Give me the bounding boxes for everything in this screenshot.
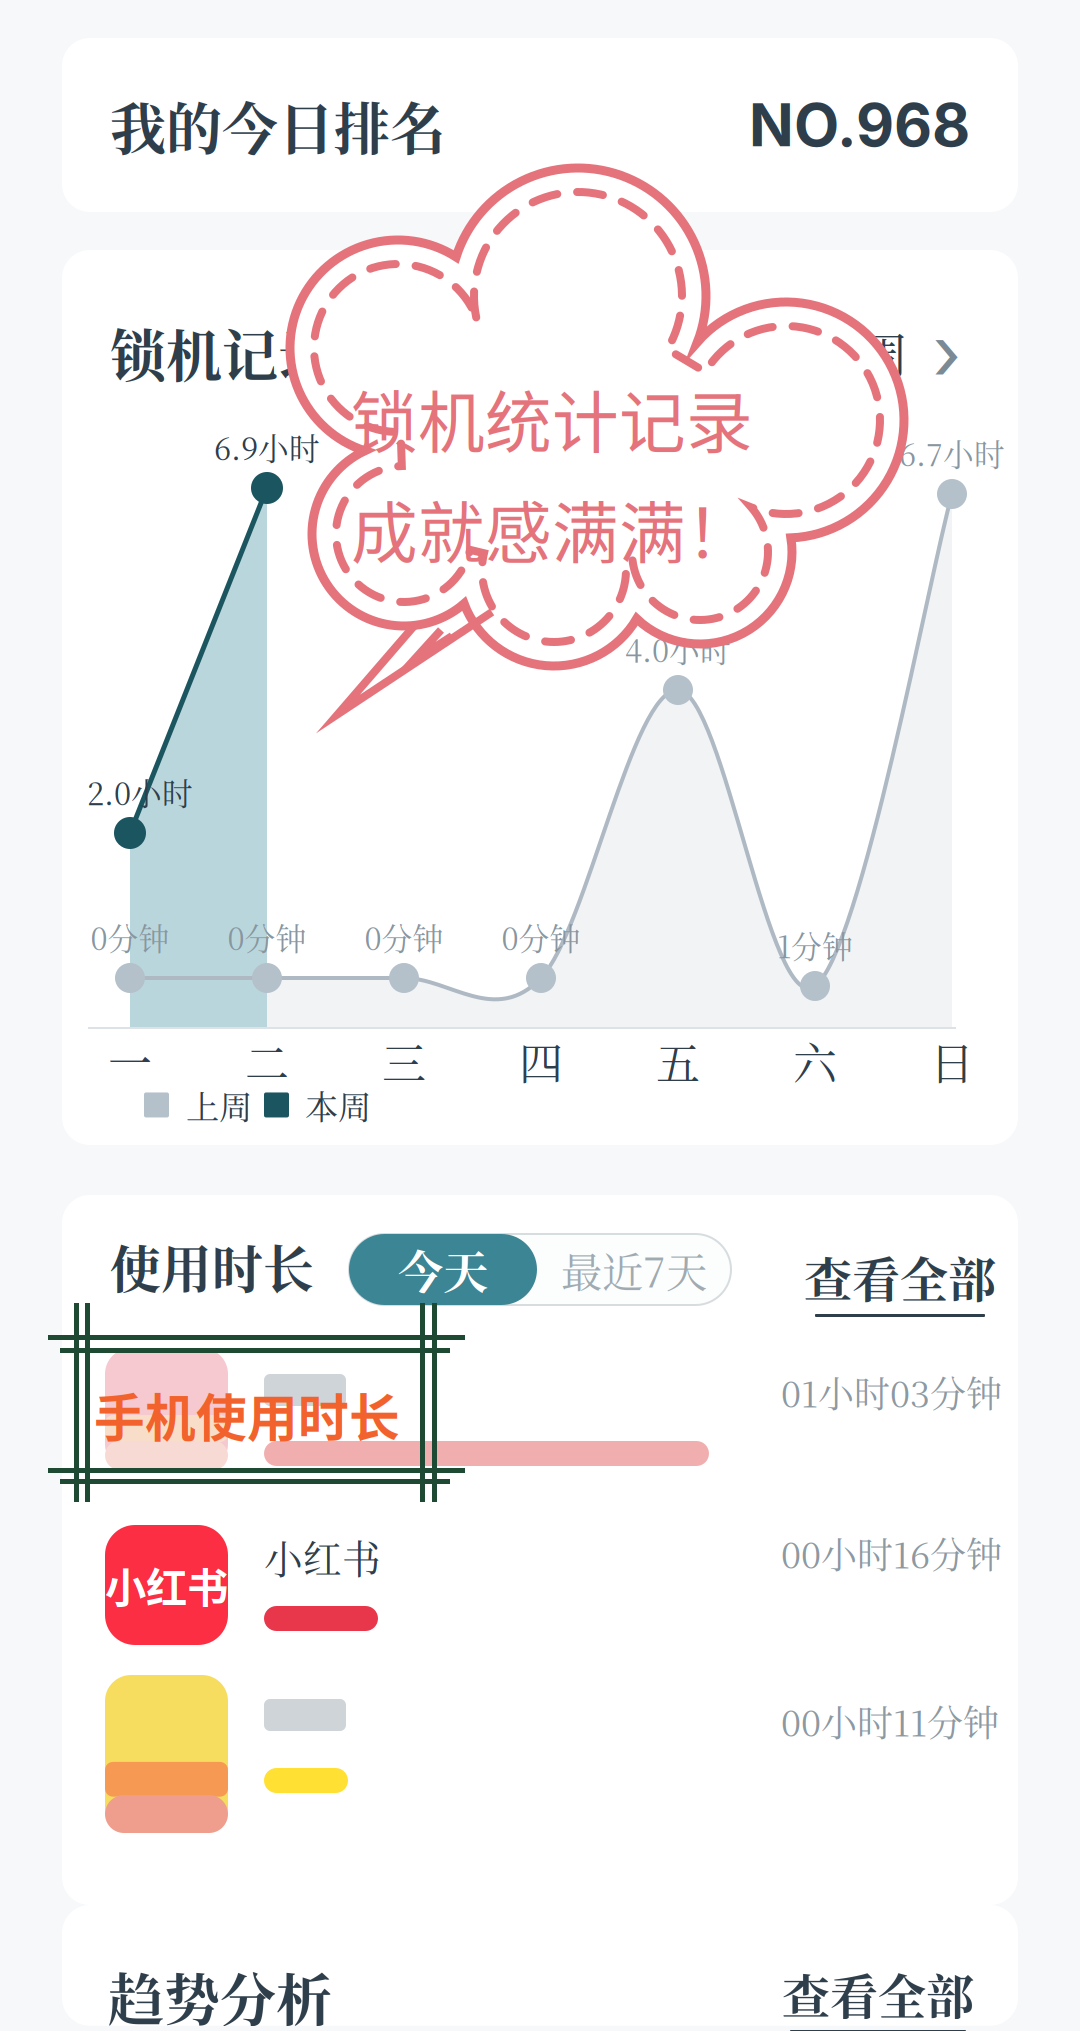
staticText: 0分钟 [364,915,443,959]
button[interactable]: 上周 [796,318,924,387]
staticText: 成就感满满！ [351,480,753,577]
button[interactable]: 最近7天 [537,1234,731,1305]
button[interactable]: Previous week [750,321,796,383]
staticText: 0分钟 [90,915,169,959]
staticText: 01小时03分钟 [781,1366,1002,1418]
staticText: 趋势分析 [108,1956,332,2031]
staticText: 锁机统计记录 [351,370,753,466]
staticText: 0分钟 [501,915,580,959]
staticText: 日 [930,1029,974,1093]
staticText: 00小时11分钟 [781,1695,999,1747]
button[interactable]: Next week [924,321,970,383]
staticText: 三 [382,1029,426,1093]
staticText: › [932,307,961,397]
staticText: 6.7小时 [899,431,1005,475]
staticText: 上周 [186,1081,252,1129]
staticText: 查看全部 [782,1959,974,2028]
staticText: 今天 [398,1237,488,1302]
button[interactable]: 我的今日排名 [62,38,1018,212]
staticText: 五 [656,1029,700,1093]
staticText: 手机使用时长 [94,1378,400,1451]
staticText: 本周 [305,1081,371,1129]
staticText: 0分钟 [227,915,306,959]
staticText: 2.0小时 [87,770,193,814]
staticText: 使用时长 [110,1230,314,1303]
button[interactable]: 查看全部 [804,1242,996,1317]
staticText: 小红书 [264,1529,381,1585]
staticText: 一 [108,1029,152,1093]
staticText: 00小时16分钟 [781,1527,1002,1579]
staticText: 6.9小时 [214,425,320,469]
staticText: 查看全部 [804,1242,996,1311]
staticText: 最近7天 [561,1240,707,1299]
staticText: 二 [245,1029,289,1093]
button[interactable]: 查看全部 [782,1959,974,2031]
staticText: 4.0小时 [625,627,731,671]
staticText: 锁机记录 [110,312,334,392]
staticText: 小红书 [105,1555,228,1615]
staticText: NO.968 [749,89,970,160]
staticText: 我的今日排名 [110,85,446,165]
staticText: 上周 [812,318,908,387]
button[interactable]: 今天 [349,1234,537,1305]
staticText: 四 [519,1029,563,1093]
staticText: 1分钟 [777,923,853,967]
staticText: 六 [793,1029,837,1093]
staticText: ‹ [758,307,787,397]
